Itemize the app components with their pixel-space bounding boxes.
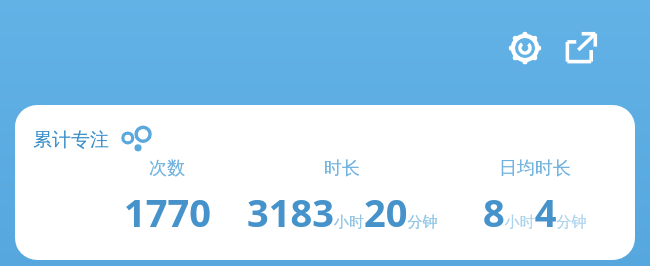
staticText: 8小时4分钟 bbox=[483, 186, 587, 238]
button[interactable]: 日均时长 bbox=[385, 157, 635, 238]
staticText: 时长 bbox=[324, 157, 360, 180]
button[interactable]: 次数 bbox=[17, 157, 317, 238]
staticText: 3183小时20分钟 bbox=[247, 186, 438, 238]
button[interactable]: Settings bbox=[497, 20, 553, 76]
staticText: 日均时长 bbox=[499, 157, 571, 180]
staticText: 累计专注 bbox=[33, 128, 109, 152]
button[interactable]: Share bbox=[553, 20, 609, 76]
staticText: 次数 bbox=[149, 157, 185, 180]
staticText: 1770 bbox=[124, 186, 211, 238]
button[interactable]: 时长 bbox=[192, 157, 492, 238]
button[interactable]: 累计专注 bbox=[15, 105, 635, 260]
